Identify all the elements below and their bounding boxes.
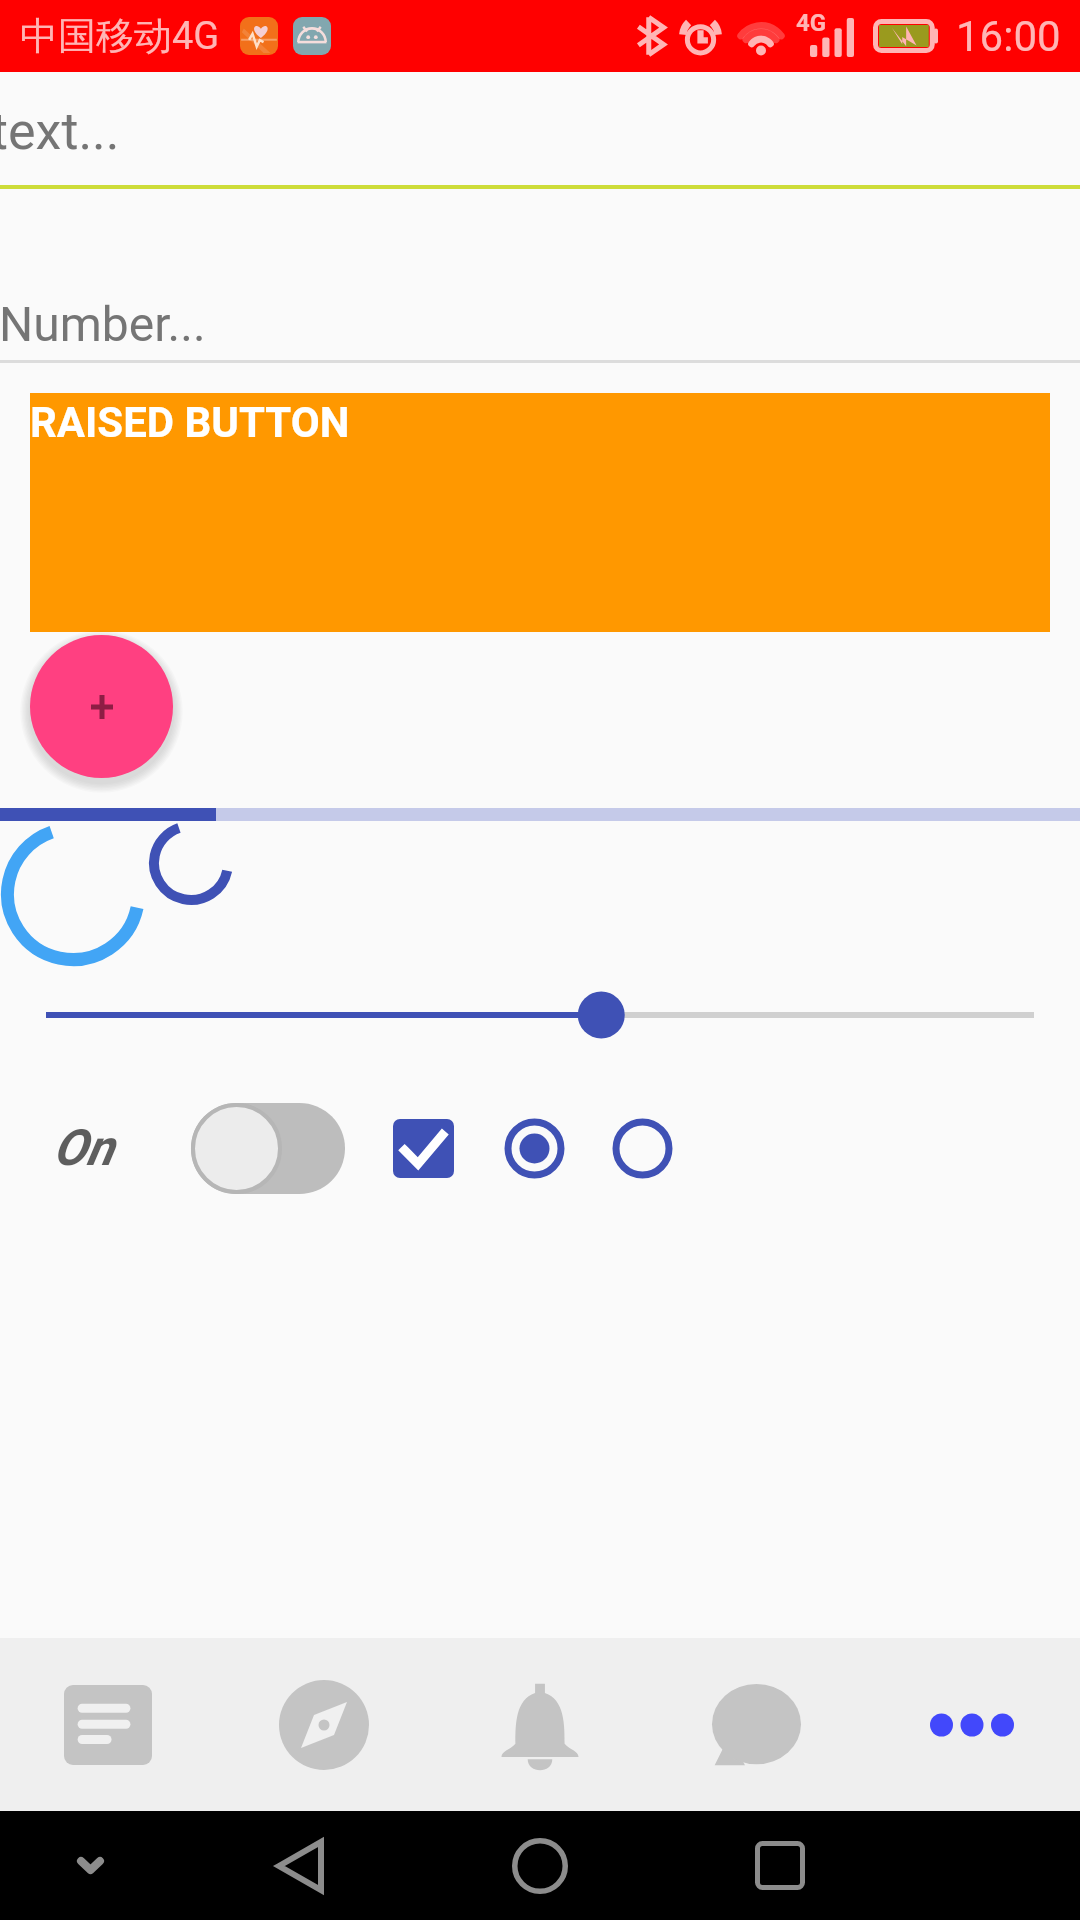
staticText: Number... <box>0 296 206 352</box>
staticText: 4G <box>796 9 827 37</box>
button[interactable]: Back <box>240 1811 360 1920</box>
staticText: RAISED BUTTON <box>30 398 350 447</box>
button[interactable]: More <box>864 1638 1080 1811</box>
button[interactable]: Explore <box>216 1638 432 1811</box>
button[interactable]: Switch <box>191 1103 345 1194</box>
button[interactable]: Radio button unselected <box>612 1118 673 1179</box>
button[interactable]: Articles <box>0 1638 216 1811</box>
staticText: 中国移动4G <box>20 12 220 60</box>
button[interactable]: Add <box>30 635 173 778</box>
button[interactable]: Radio button selected <box>504 1118 565 1179</box>
button[interactable]: Checkbox checked <box>393 1119 454 1178</box>
button[interactable]: Recent apps <box>720 1811 840 1920</box>
button[interactable]: Hide keyboard <box>30 1811 150 1920</box>
button[interactable]: Messages <box>648 1638 864 1811</box>
staticText: On <box>53 1119 114 1178</box>
staticText: text... <box>0 101 120 162</box>
button[interactable]: Notifications <box>432 1638 648 1811</box>
button[interactable]: RAISED BUTTON <box>30 393 1050 632</box>
button[interactable]: Home <box>480 1811 600 1920</box>
staticText: 16:00 <box>956 12 1061 61</box>
